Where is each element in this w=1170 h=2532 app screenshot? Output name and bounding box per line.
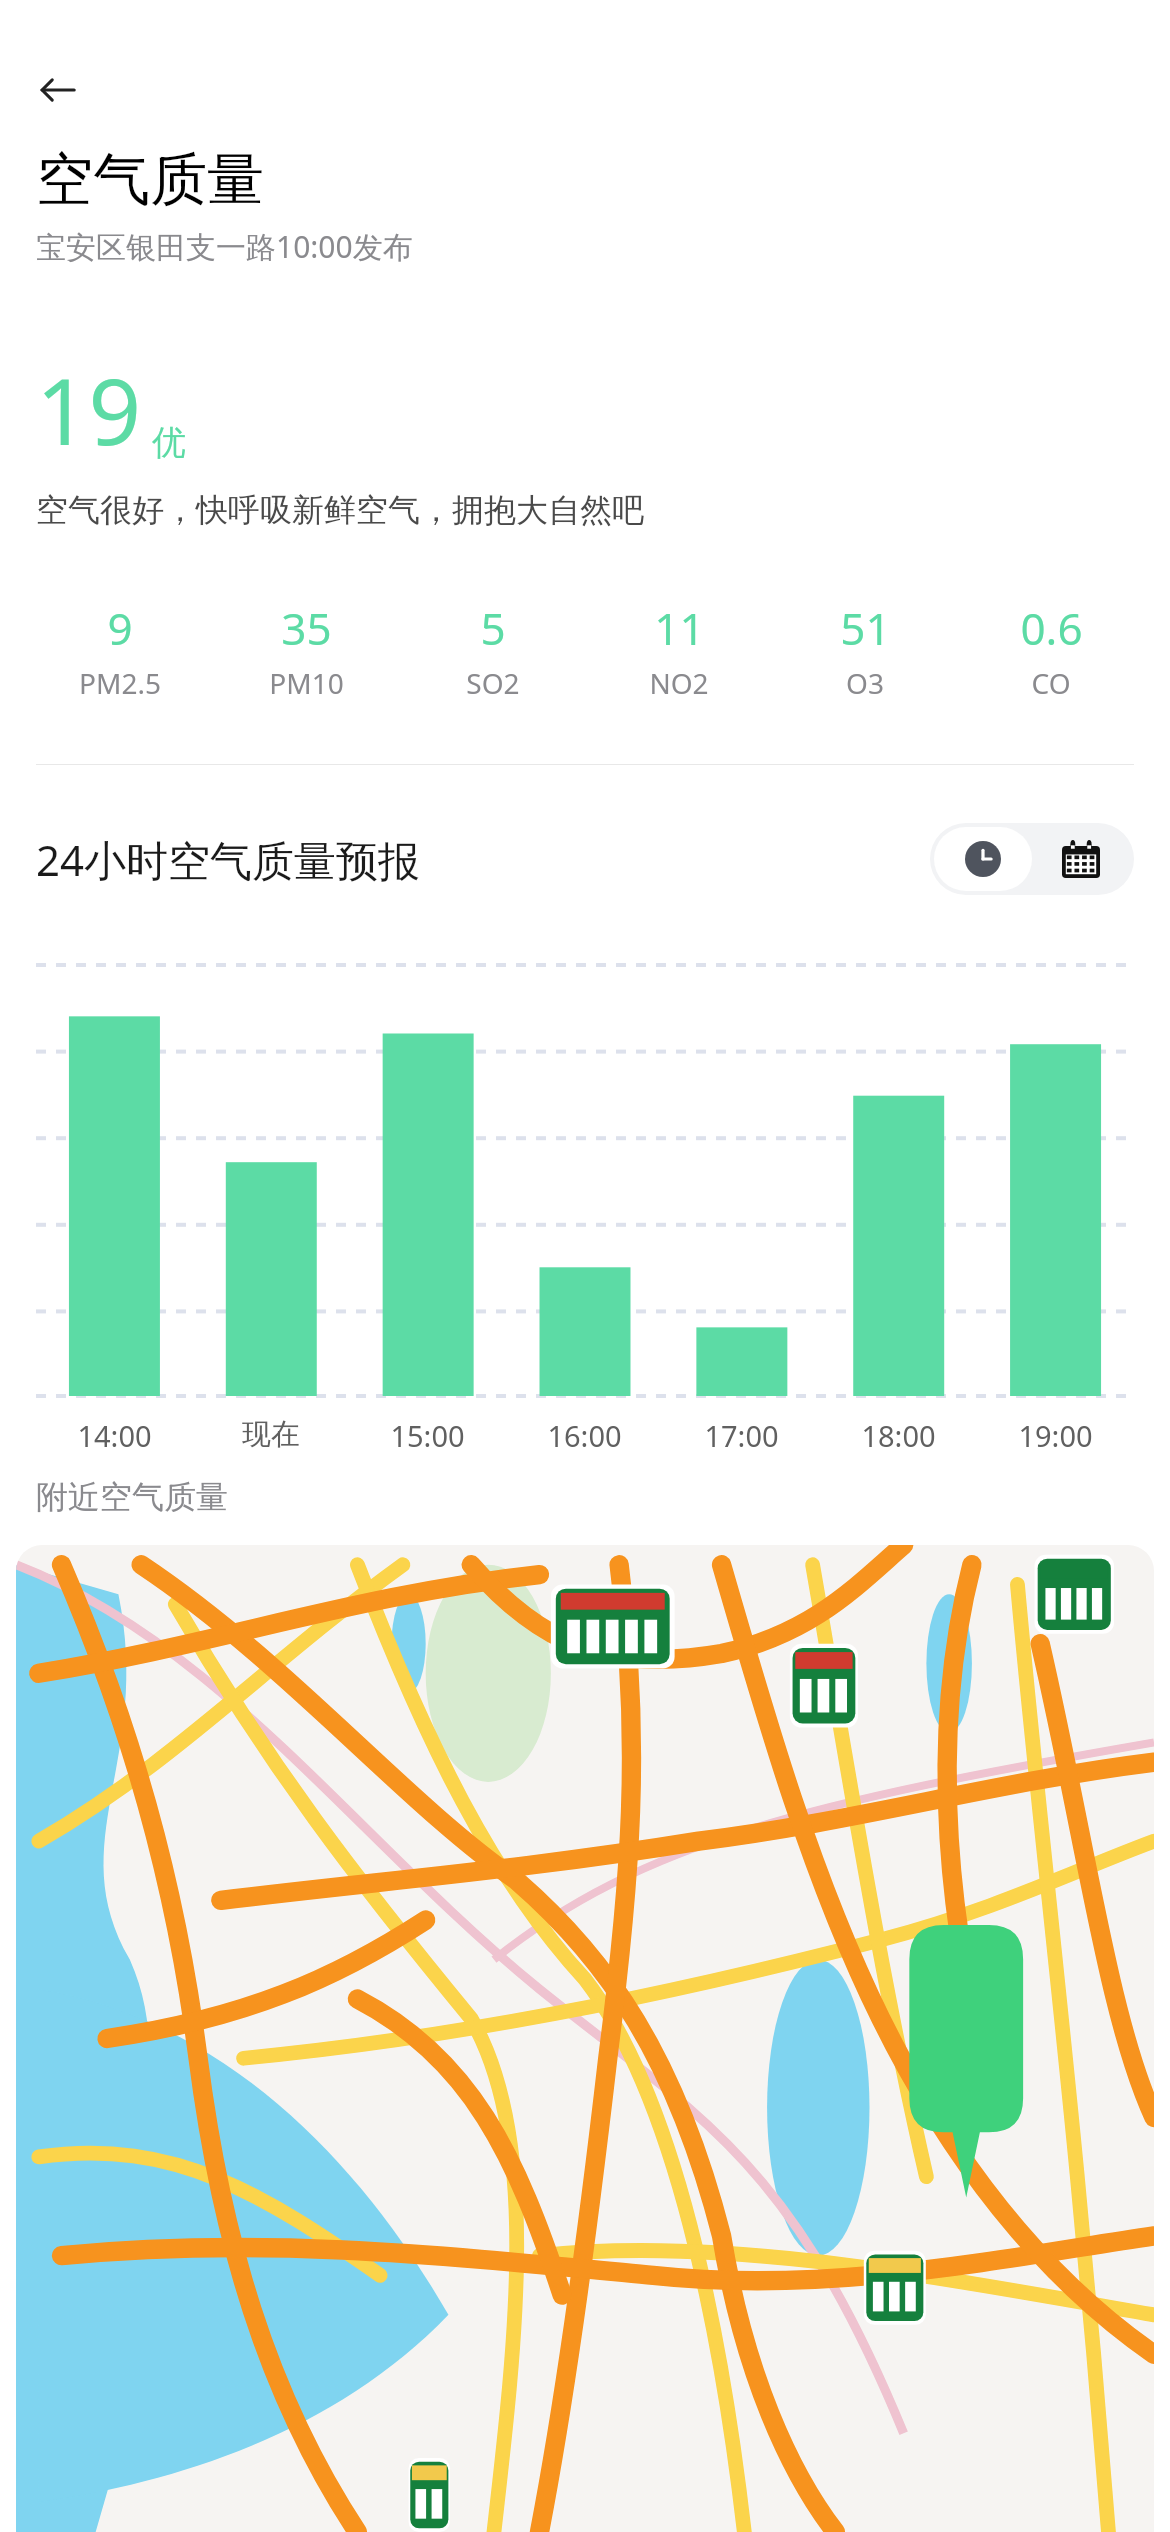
button[interactable]: Daily forecast: [1032, 827, 1130, 891]
staticText: CO: [1031, 664, 1071, 702]
staticText: PM2.5: [79, 664, 161, 702]
staticText: 宝安区银田支一路10:00发布: [36, 226, 413, 267]
staticText: 19:00: [1018, 1416, 1093, 1455]
staticText: 51: [840, 598, 891, 658]
button[interactable]: Back: [30, 62, 86, 118]
staticText: 附近空气质量: [36, 1477, 228, 1517]
staticText: 11: [654, 598, 705, 658]
staticText: 35: [281, 598, 332, 658]
staticText: 空气质量: [36, 144, 264, 216]
staticText: 16:00: [547, 1416, 622, 1455]
staticText: 17:00: [704, 1416, 779, 1455]
staticText: 5: [480, 598, 506, 658]
staticText: 18:00: [861, 1416, 936, 1455]
staticText: 24小时空气质量预报: [36, 831, 421, 888]
staticText: O3: [846, 664, 884, 702]
staticText: 14:00: [77, 1416, 152, 1455]
button[interactable]: Hourly forecast: [934, 827, 1032, 891]
staticText: 优: [152, 421, 186, 464]
staticText: 0.6: [1020, 598, 1083, 658]
staticText: PM10: [269, 664, 344, 702]
staticText: 现在: [242, 1416, 300, 1453]
button[interactable]: Nearby air quality map: [16, 1545, 1154, 2532]
staticText: 19: [36, 347, 142, 472]
staticText: NO2: [649, 664, 709, 702]
staticText: 9: [107, 598, 133, 658]
staticText: 15:00: [390, 1416, 465, 1455]
staticText: SO2: [466, 664, 520, 702]
staticText: 空气很好，快呼吸新鲜空气，拥抱大自然吧: [36, 490, 644, 530]
